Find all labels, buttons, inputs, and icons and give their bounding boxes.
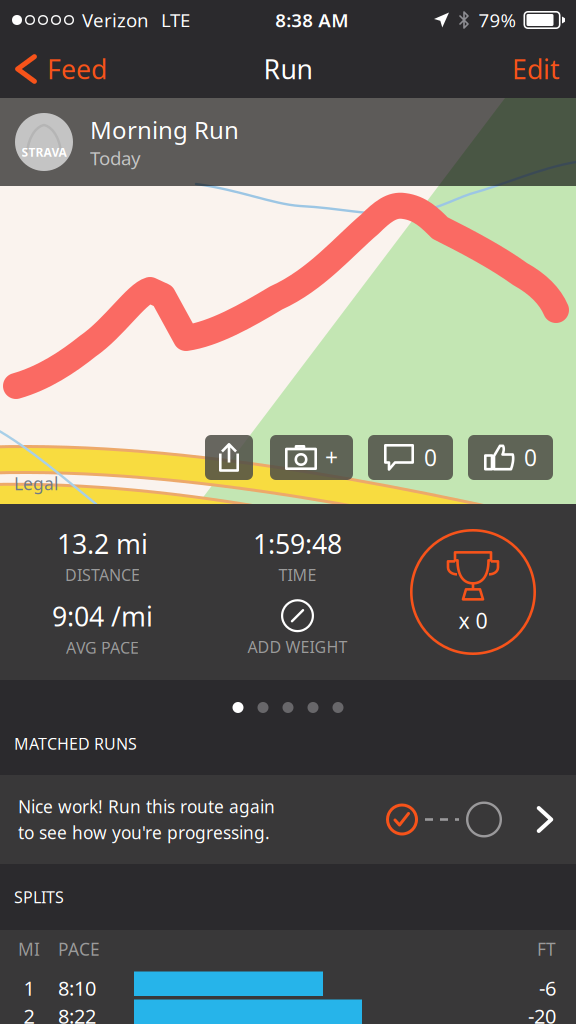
staticText: -6 bbox=[539, 975, 556, 1001]
staticText: to see how you're progressing. bbox=[18, 821, 270, 844]
staticText: 8:38 AM bbox=[275, 8, 348, 32]
staticText: 79% bbox=[478, 8, 516, 32]
button[interactable]: Nice work! Run this route again bbox=[0, 775, 576, 864]
staticText: 0 bbox=[424, 442, 437, 472]
staticText: Run bbox=[263, 51, 312, 87]
staticText: FT bbox=[537, 937, 556, 960]
staticText: -20 bbox=[528, 1003, 556, 1024]
staticText: ADD WEIGHT bbox=[247, 636, 347, 657]
button[interactable]: ADD WEIGHT bbox=[205, 599, 390, 657]
staticText: 1:59:48 bbox=[253, 526, 342, 561]
staticText: Nice work! Run this route again bbox=[18, 795, 275, 818]
staticText: LTE bbox=[161, 8, 190, 32]
staticText: 13.2 mi bbox=[57, 526, 148, 561]
staticText: SPLITS bbox=[14, 886, 64, 908]
staticText: MI bbox=[18, 937, 40, 960]
staticText: PACE bbox=[58, 937, 100, 960]
button[interactable]: Add photo bbox=[270, 435, 353, 480]
staticText: Today bbox=[90, 145, 141, 170]
staticText: TIME bbox=[278, 564, 316, 585]
staticText: MATCHED RUNS bbox=[14, 733, 137, 754]
staticText: 0 bbox=[524, 442, 537, 472]
button[interactable]: Achievements bbox=[410, 529, 536, 655]
button[interactable]: Edit bbox=[500, 40, 576, 98]
staticText: 8:10 bbox=[58, 975, 96, 1001]
staticText: Feed bbox=[47, 51, 107, 87]
staticText: Legal bbox=[14, 472, 58, 495]
staticText: Verizon bbox=[82, 8, 149, 32]
staticText: STRAVA bbox=[21, 144, 66, 160]
staticText: + bbox=[325, 442, 338, 472]
staticText: x 0 bbox=[458, 606, 487, 635]
button[interactable]: Feed bbox=[0, 40, 119, 98]
staticText: Morning Run bbox=[90, 114, 239, 146]
staticText: 2 bbox=[23, 1003, 34, 1024]
staticText: DISTANCE bbox=[65, 564, 140, 585]
button[interactable]: Share bbox=[205, 435, 253, 480]
staticText: 8:22 bbox=[58, 1003, 96, 1024]
button[interactable]: Give kudos bbox=[468, 435, 553, 480]
staticText: 1 bbox=[23, 975, 34, 1001]
staticText: Edit bbox=[512, 51, 560, 87]
staticText: AVG PACE bbox=[66, 637, 139, 658]
staticText: 9:04 /mi bbox=[52, 598, 153, 634]
button[interactable]: Comments bbox=[368, 435, 453, 480]
